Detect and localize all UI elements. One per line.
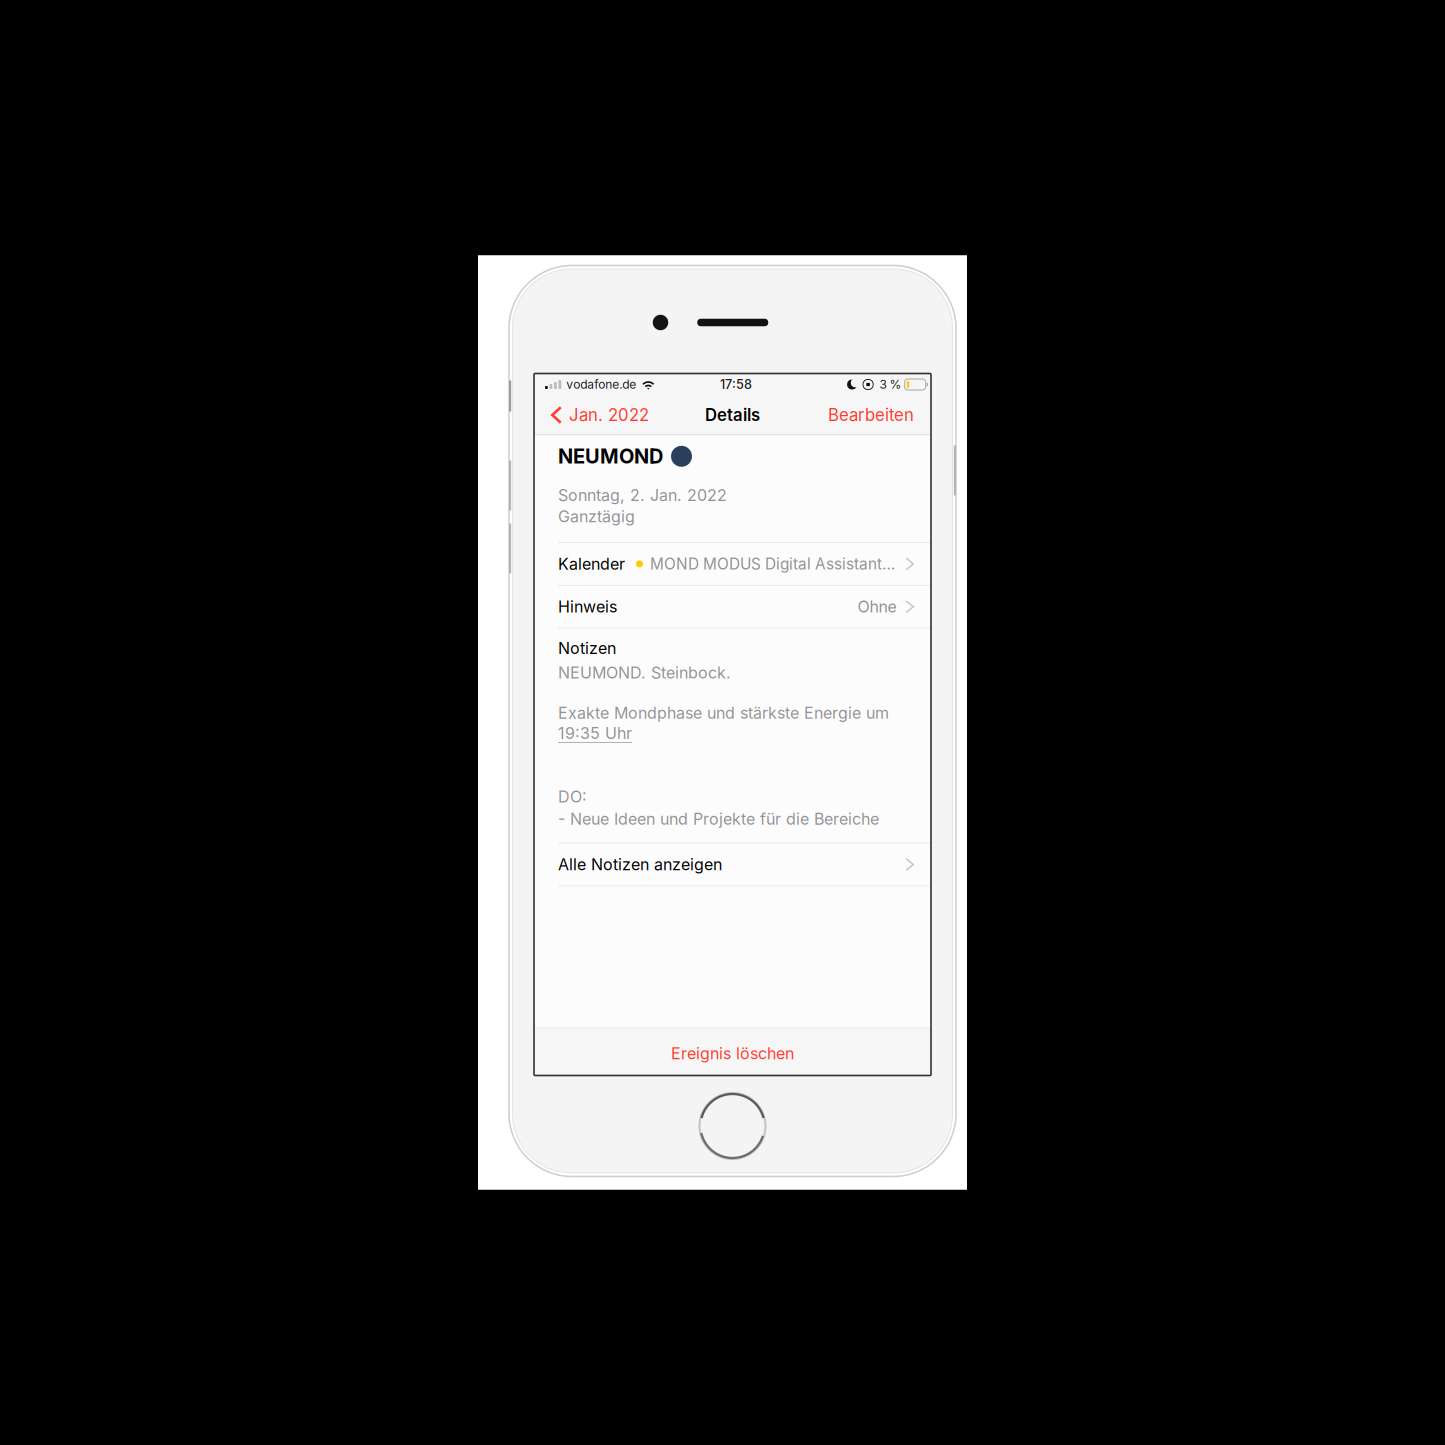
- button[interactable]: Jan. 2022: [534, 399, 649, 431]
- staticText: vodafone.de: [566, 377, 636, 392]
- staticText: Jan. 2022: [569, 405, 649, 425]
- staticText: Alle Notizen anzeigen: [558, 855, 722, 874]
- staticText: 17:58: [720, 377, 752, 392]
- staticText: - Neue Ideen und Projekte für die Bereic…: [558, 809, 879, 829]
- button[interactable]: Bearbeiten: [828, 399, 931, 431]
- button[interactable]: Kalender: [534, 543, 931, 585]
- staticText: Sonntag, 2. Jan. 2022: [558, 485, 727, 505]
- staticText: MOND MODUS Digital Assistant…: [650, 555, 895, 573]
- button[interactable]: 19:35 Uhr: [558, 724, 632, 743]
- staticText: Details: [705, 405, 760, 425]
- staticText: Notizen: [558, 638, 616, 658]
- button[interactable]: Ereignis löschen: [534, 1028, 931, 1075]
- staticText: Hinweis: [558, 597, 617, 616]
- staticText: Exakte Mondphase und stärkste Energie um: [558, 703, 889, 723]
- button[interactable]: Alle Notizen anzeigen: [534, 843, 931, 885]
- staticText: Ganztägig: [558, 507, 635, 526]
- staticText: 19:35 Uhr: [558, 724, 632, 743]
- staticText: Kalender: [558, 554, 625, 574]
- staticText: NEUMOND. Steinbock.: [558, 663, 731, 682]
- staticText: 3 %: [880, 377, 902, 392]
- staticText: DO:: [558, 787, 587, 806]
- button[interactable]: Hinweis: [534, 586, 931, 628]
- staticText: Ereignis löschen: [671, 1044, 794, 1063]
- staticText: Bearbeiten: [828, 405, 914, 425]
- staticText: NEUMOND: [558, 444, 663, 468]
- staticText: Ohne: [857, 597, 896, 616]
